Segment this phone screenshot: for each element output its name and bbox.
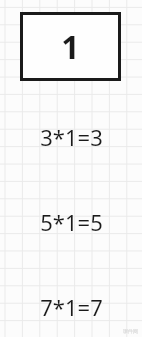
staticText: 3*1=3	[40, 122, 103, 152]
button[interactable]: 7*1=7	[0, 292, 142, 322]
button[interactable]: 5*1=5	[0, 207, 142, 237]
other: Watermark	[123, 328, 138, 334]
button[interactable]: 1	[20, 12, 121, 81]
staticText: 5*1=5	[40, 207, 103, 237]
staticText: 7*1=7	[40, 292, 103, 322]
staticText: 1	[61, 25, 80, 69]
staticText: 课件网	[123, 328, 138, 334]
button[interactable]: 3*1=3	[0, 122, 142, 152]
